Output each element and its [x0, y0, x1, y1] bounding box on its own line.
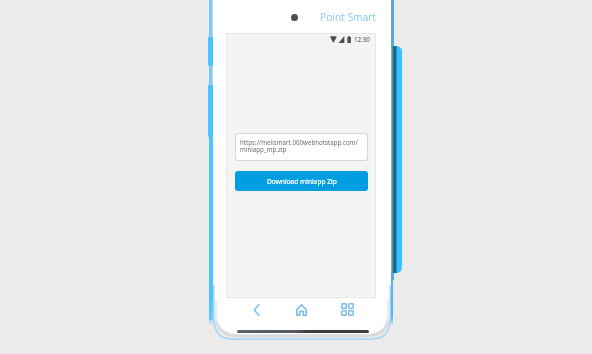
button[interactable]: Recent apps: [338, 300, 357, 319]
button[interactable]: Back: [247, 300, 266, 319]
button[interactable]: Home: [292, 300, 311, 319]
button[interactable]: Download miniapp Zip: [235, 171, 368, 191]
button[interactable]: https://melismart.000webhotstapp.com/ mi…: [235, 133, 368, 161]
staticText: 12:30: [354, 35, 370, 43]
staticText: https://melismart.000webhotstapp.com/ mi…: [240, 138, 358, 154]
staticText: Point Smart: [320, 10, 377, 24]
staticText: Download miniapp Zip: [267, 177, 337, 186]
